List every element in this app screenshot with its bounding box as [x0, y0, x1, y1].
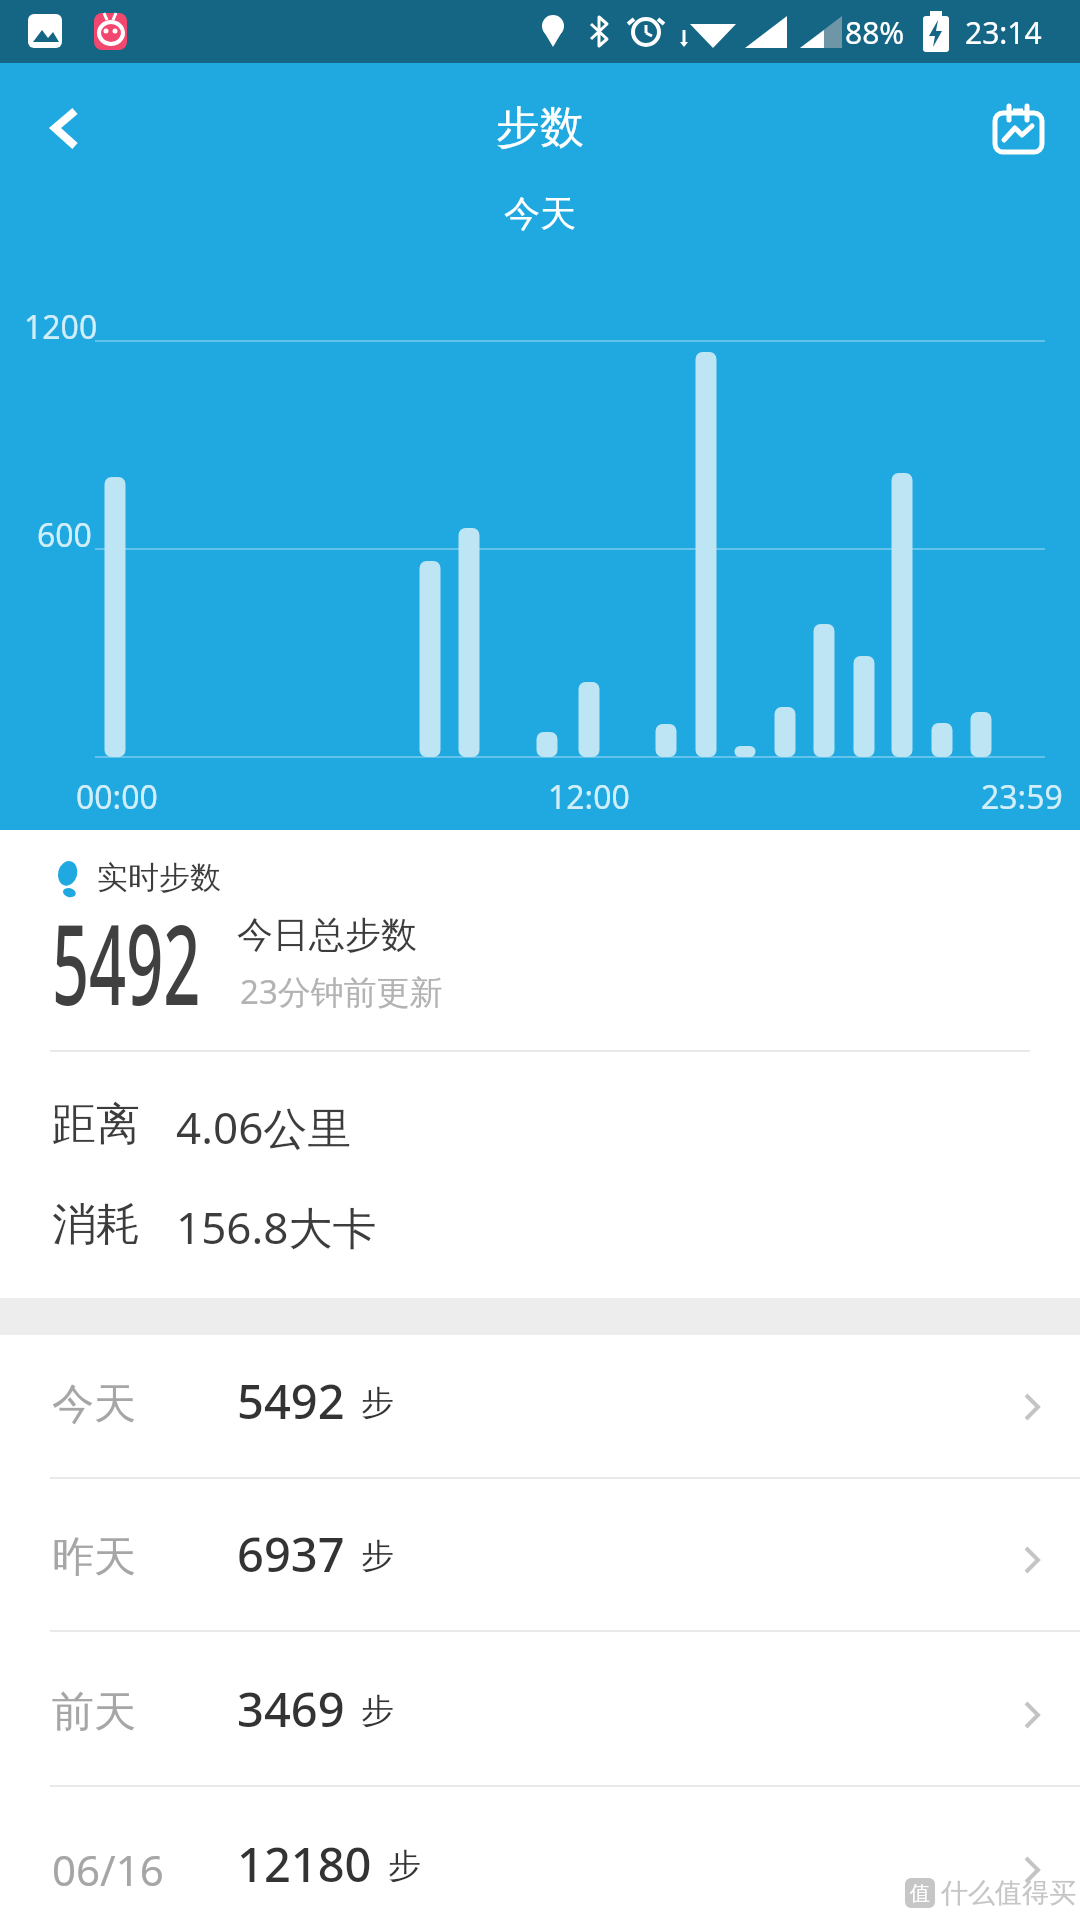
staticText: 156.8大卡	[176, 1197, 377, 1257]
staticText: 4.06公里	[176, 1097, 352, 1157]
staticText: 值	[910, 1881, 930, 1906]
staticText: 23:59	[981, 775, 1063, 819]
staticText: 今天	[504, 191, 576, 236]
button[interactable]: 前天	[0, 1643, 1080, 1786]
button[interactable]: 今天	[0, 1335, 1080, 1478]
staticText: 600	[37, 513, 92, 557]
staticText: 23:14	[965, 12, 1042, 53]
staticText: 步	[361, 1690, 394, 1732]
staticText: 23分钟前更新	[240, 969, 443, 1014]
staticText: 距离	[52, 1097, 140, 1152]
staticText: 实时步数	[97, 858, 221, 897]
button[interactable]: 06/16	[0, 1798, 1080, 1920]
staticText: 88%	[845, 12, 905, 53]
staticText: 1200	[24, 305, 98, 349]
button[interactable]	[975, 88, 1060, 158]
staticText: 00:00	[76, 775, 158, 819]
staticText: 步	[361, 1382, 394, 1424]
button[interactable]	[30, 88, 100, 158]
staticText: 3469	[237, 1677, 345, 1741]
staticText: 步	[361, 1535, 394, 1577]
staticText: 5492	[52, 887, 201, 1037]
staticText: 5492	[237, 1369, 345, 1433]
staticText: 6937	[237, 1522, 345, 1586]
staticText: 12:00	[548, 775, 630, 819]
staticText: 12180	[237, 1832, 372, 1896]
staticText: 步数	[496, 100, 584, 155]
staticText: 今天	[52, 1378, 136, 1431]
staticText: 今日总步数	[237, 912, 417, 957]
staticText: 前天	[52, 1686, 136, 1739]
button[interactable]: 昨天	[0, 1488, 1080, 1631]
staticText: 消耗	[52, 1197, 140, 1252]
staticText: 06/16	[52, 1841, 164, 1898]
staticText: 昨天	[52, 1531, 136, 1584]
staticText: 步	[388, 1845, 421, 1887]
staticText: 什么值得买	[941, 1876, 1076, 1910]
